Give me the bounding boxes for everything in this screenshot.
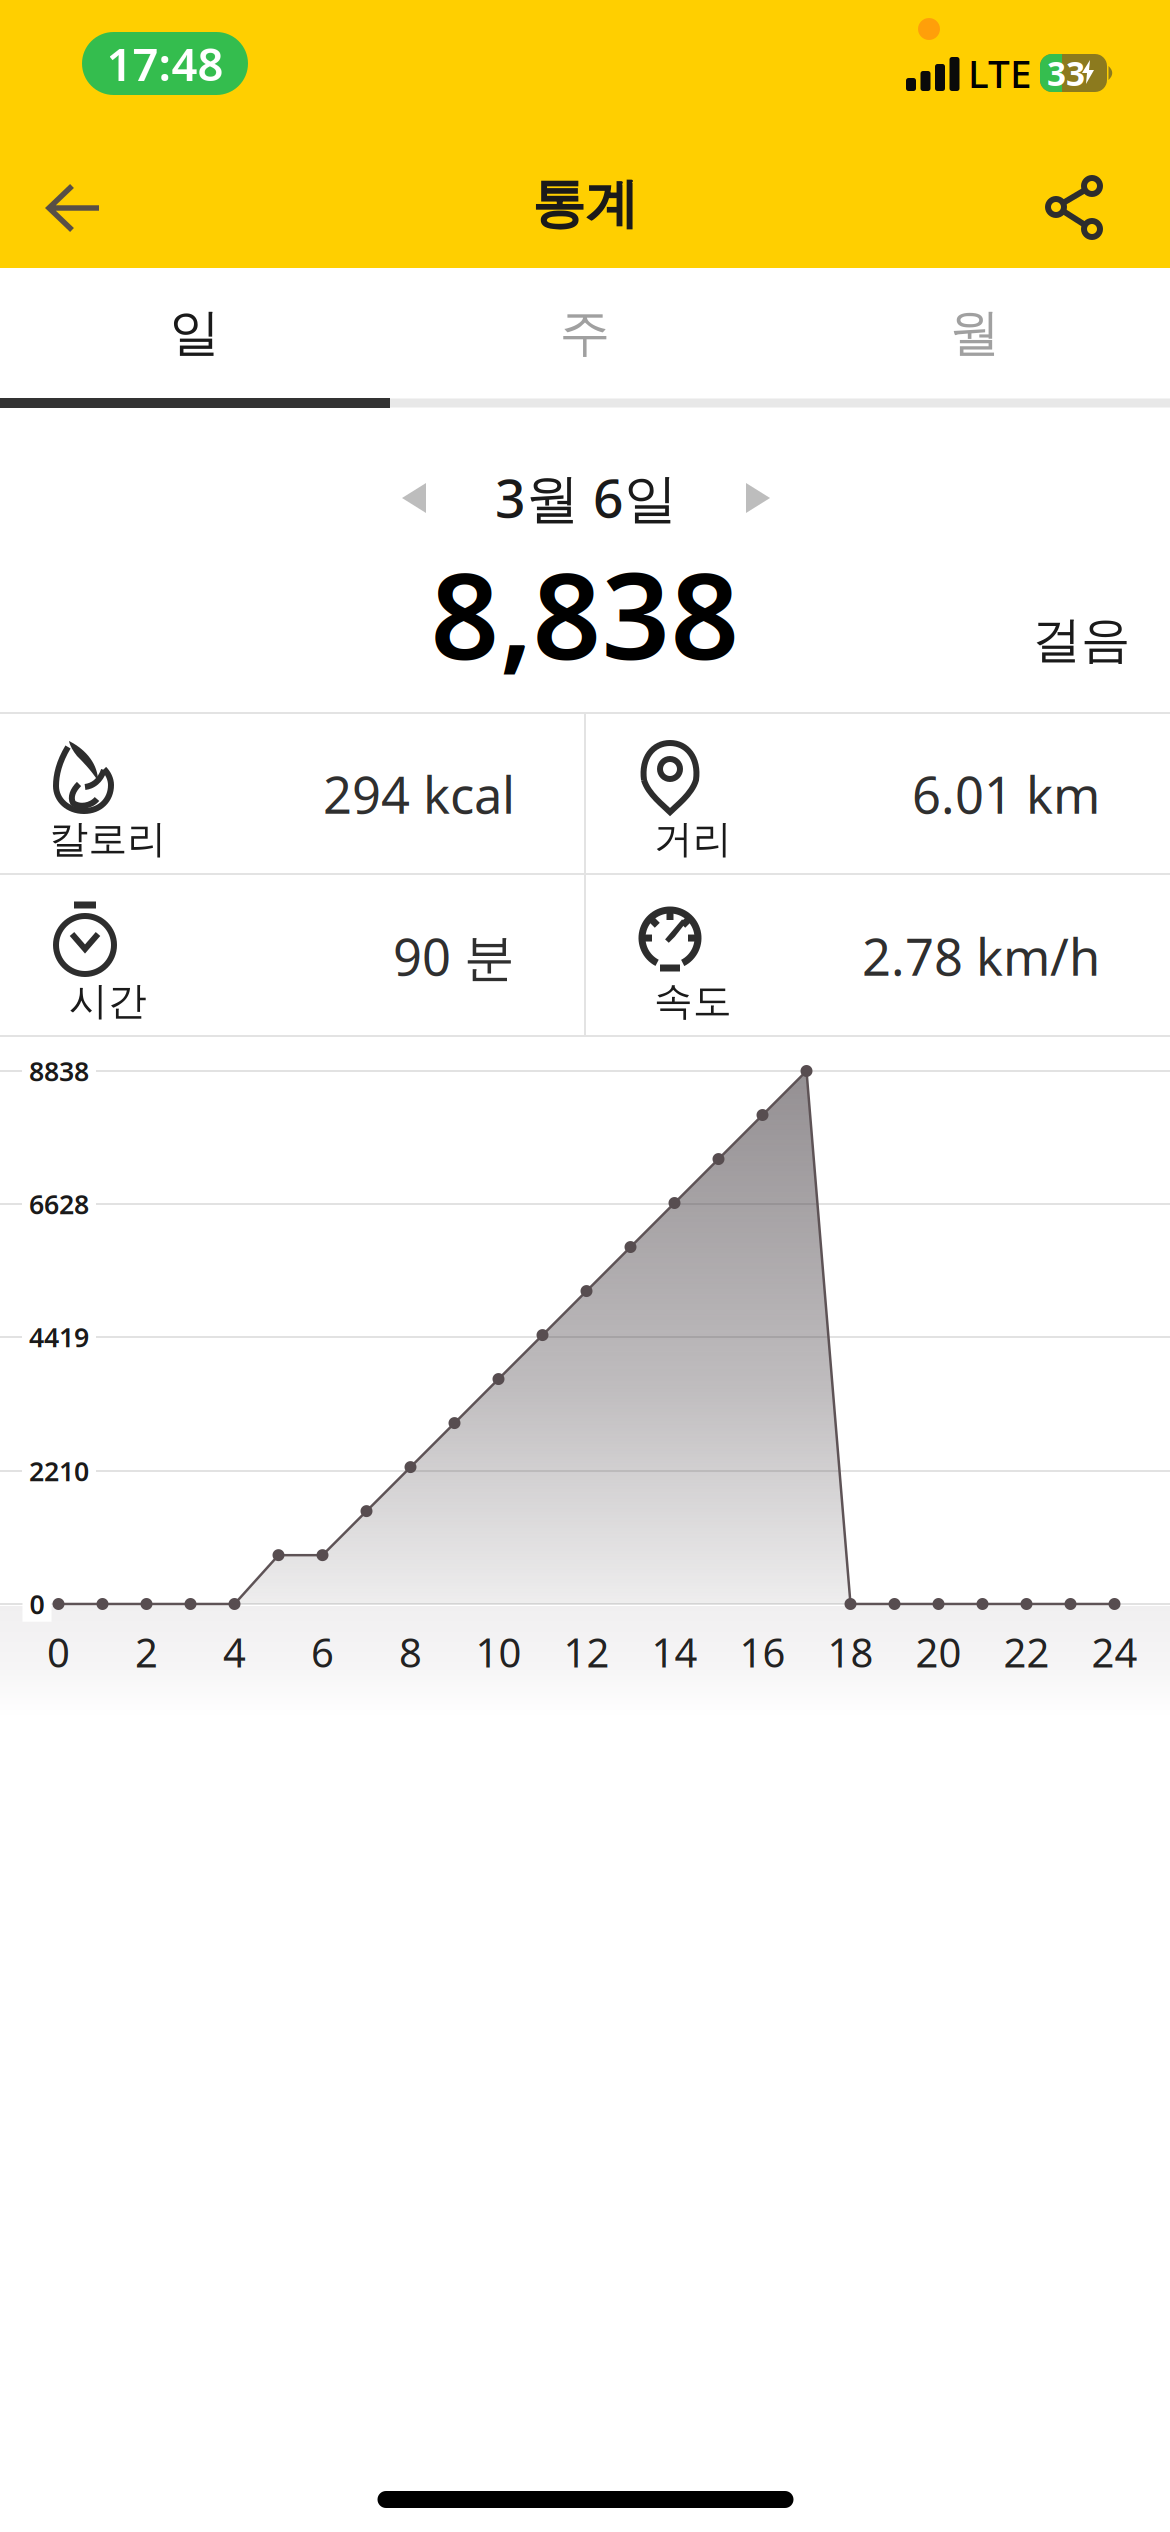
button[interactable]: Back: [17, 159, 107, 249]
button[interactable]: Previous day: [401, 482, 427, 514]
staticText: 2: [135, 1625, 158, 1678]
staticText: 14: [651, 1625, 697, 1678]
staticText: 20: [915, 1625, 961, 1678]
staticText: 16: [739, 1625, 785, 1678]
staticText: 일: [169, 302, 220, 364]
staticText: 0: [47, 1625, 70, 1678]
staticText: 12: [563, 1625, 609, 1678]
staticText: 2210: [29, 1453, 89, 1489]
staticText: 18: [827, 1625, 873, 1678]
staticText: 4419: [29, 1319, 89, 1355]
staticText: 8838: [29, 1053, 89, 1089]
staticText: 6: [311, 1625, 334, 1678]
button[interactable]: 일: [0, 268, 390, 398]
staticText: 17:48: [106, 33, 223, 94]
staticText: 2.78 km/h: [862, 922, 1100, 990]
staticText: 4: [223, 1625, 246, 1678]
button[interactable]: 주: [390, 268, 780, 398]
staticText: 칼로리: [49, 815, 166, 863]
staticText: 걸음: [1032, 610, 1130, 670]
staticText: 시간: [69, 977, 147, 1025]
staticText: 33: [1047, 51, 1085, 95]
staticText: 10: [475, 1625, 521, 1678]
staticText: 주: [559, 302, 610, 364]
button[interactable]: Next day: [745, 482, 771, 514]
staticText: 8,838: [430, 533, 739, 693]
staticText: 3월 6일: [495, 462, 677, 532]
staticText: 통계: [532, 171, 638, 237]
staticText: 8: [399, 1625, 422, 1678]
button[interactable]: Share: [1029, 162, 1119, 252]
staticText: 0: [29, 1586, 44, 1622]
button[interactable]: 17:48: [82, 32, 248, 95]
staticText: 6628: [29, 1186, 89, 1222]
staticText: 거리: [654, 815, 732, 863]
staticText: 속도: [654, 977, 732, 1025]
staticText: 24: [1091, 1625, 1137, 1678]
button[interactable]: 월: [780, 268, 1170, 398]
staticText: 월: [949, 302, 1000, 364]
staticText: LTE: [968, 47, 1032, 99]
staticText: 22: [1003, 1625, 1049, 1678]
staticText: 6.01 km: [912, 760, 1100, 828]
staticText: 294 kcal: [323, 760, 515, 828]
staticText: 90 분: [393, 922, 515, 990]
